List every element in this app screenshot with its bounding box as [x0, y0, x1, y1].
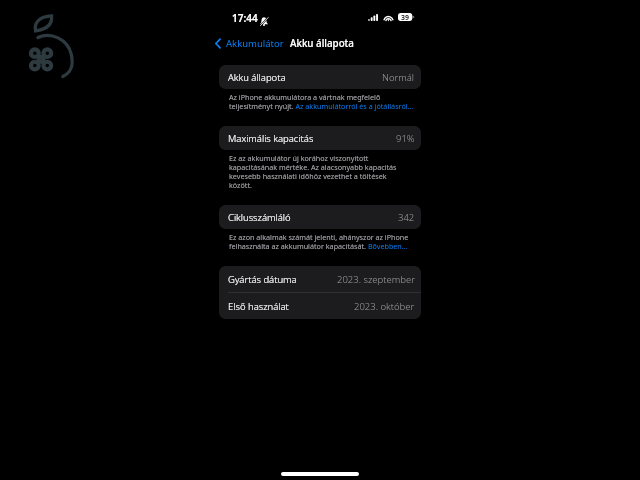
other: Battery 39 percent — [398, 13, 416, 21]
staticText: 2023. október — [354, 300, 415, 313]
button[interactable]: Akkumulátor — [214, 35, 285, 52]
staticText: Akkumulátor — [226, 37, 284, 50]
staticText: Akku állapota — [290, 37, 354, 50]
staticText: Gyártás dátuma — [228, 273, 297, 286]
staticText: Első használat — [228, 300, 289, 313]
other: Silent mode on — [260, 17, 268, 26]
staticText: 342 — [398, 211, 415, 224]
button[interactable]: Az iPhone akkumulátora a vártnak megfele… — [229, 92, 421, 111]
button[interactable]: Akku állapota — [219, 65, 421, 89]
staticText: 39 — [401, 13, 410, 21]
other: Wi-Fi connected — [384, 14, 393, 21]
staticText: Normál — [382, 71, 415, 84]
staticText: 17:44 — [232, 11, 258, 25]
staticText: Maximális kapacitás — [228, 132, 314, 145]
button[interactable]: Első használat — [219, 293, 421, 319]
staticText: Ciklusszámláló — [228, 211, 291, 224]
button[interactable]: Ez azon alkalmak számát jelenti, ahánysz… — [229, 232, 421, 251]
button[interactable]: Gyártás dátuma — [219, 266, 421, 293]
other: Cellular signal — [368, 14, 378, 21]
button[interactable]: Maximális kapacitás — [219, 126, 421, 150]
staticText: Akku állapota — [228, 71, 286, 84]
staticText: 91% — [396, 132, 415, 145]
staticText: Ez az akkumulátor új korához viszonyítot… — [229, 153, 421, 190]
button[interactable]: Ciklusszámláló — [219, 205, 421, 229]
staticText: 2023. szeptember — [337, 273, 415, 286]
